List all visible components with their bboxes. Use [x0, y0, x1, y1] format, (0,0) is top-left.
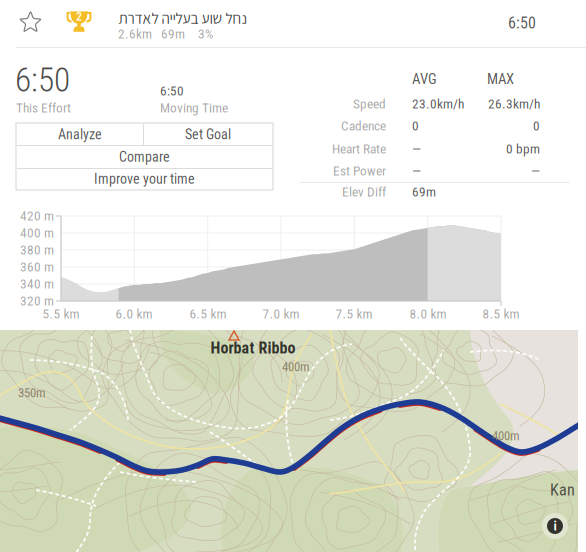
staticText: 23.0km/h: [412, 96, 464, 112]
staticText: Kan: [550, 481, 575, 499]
staticText: 380 m: [20, 242, 54, 258]
staticText: 400m: [492, 429, 520, 443]
staticText: Compare: [119, 149, 170, 165]
staticText: 340 m: [20, 276, 54, 292]
staticText: 6:50: [508, 14, 536, 32]
staticText: 420 m: [20, 208, 54, 224]
staticText: 0 bpm: [506, 141, 540, 157]
staticText: 69m: [161, 26, 185, 42]
staticText: —: [531, 163, 540, 179]
staticText: Improve your time: [94, 171, 195, 187]
button[interactable]: Compare: [17, 146, 272, 168]
staticText: 0: [412, 118, 419, 134]
staticText: —: [412, 163, 421, 179]
staticText: 3%: [198, 26, 213, 42]
staticText: 26.3km/h: [488, 96, 540, 112]
staticText: 400m: [282, 360, 310, 374]
staticText: Horbat Ribbo: [210, 339, 295, 357]
staticText: AVG: [412, 70, 437, 88]
staticText: i: [553, 518, 556, 534]
staticText: Cadence: [341, 118, 386, 134]
staticText: Elev Diff: [342, 184, 386, 200]
staticText: 2.6km: [118, 26, 152, 42]
staticText: 5.5 km: [42, 306, 79, 322]
staticText: 8.0 km: [409, 306, 446, 322]
staticText: —: [412, 141, 421, 157]
staticText: Moving Time: [160, 100, 228, 116]
button[interactable]: Set Goal: [144, 124, 272, 145]
button[interactable]: Analyze: [17, 124, 143, 145]
button[interactable]: Improve your time: [17, 169, 272, 189]
staticText: 6.0 km: [115, 306, 152, 322]
staticText: Est Power: [333, 163, 386, 179]
staticText: 400 m: [20, 225, 54, 241]
staticText: 8.5 km: [482, 306, 519, 322]
staticText: 350m: [18, 386, 46, 400]
button[interactable]: Favorite segment: [10, 2, 51, 42]
staticText: Speed: [353, 96, 386, 112]
staticText: 69m: [412, 184, 436, 200]
staticText: 360 m: [20, 259, 54, 275]
staticText: Set Goal: [185, 126, 231, 143]
staticText: 0: [533, 118, 540, 134]
staticText: 6:50: [15, 60, 70, 100]
staticText: 6:50: [160, 83, 184, 99]
staticText: This Effort: [16, 100, 71, 116]
staticText: נחל שוע בעלייה לאדרת: [118, 8, 247, 28]
staticText: Analyze: [58, 126, 102, 143]
staticText: MAX: [487, 70, 514, 88]
staticText: Heart Rate: [332, 141, 386, 157]
staticText: 320 m: [20, 293, 54, 309]
staticText: 7.5 km: [335, 306, 372, 322]
button[interactable]: Achievement: second place: [63, 3, 95, 41]
staticText: 7.0 km: [262, 306, 299, 322]
staticText: 2: [76, 10, 82, 24]
staticText: 6.5 km: [189, 306, 226, 322]
button[interactable]: Map information: [541, 512, 569, 540]
